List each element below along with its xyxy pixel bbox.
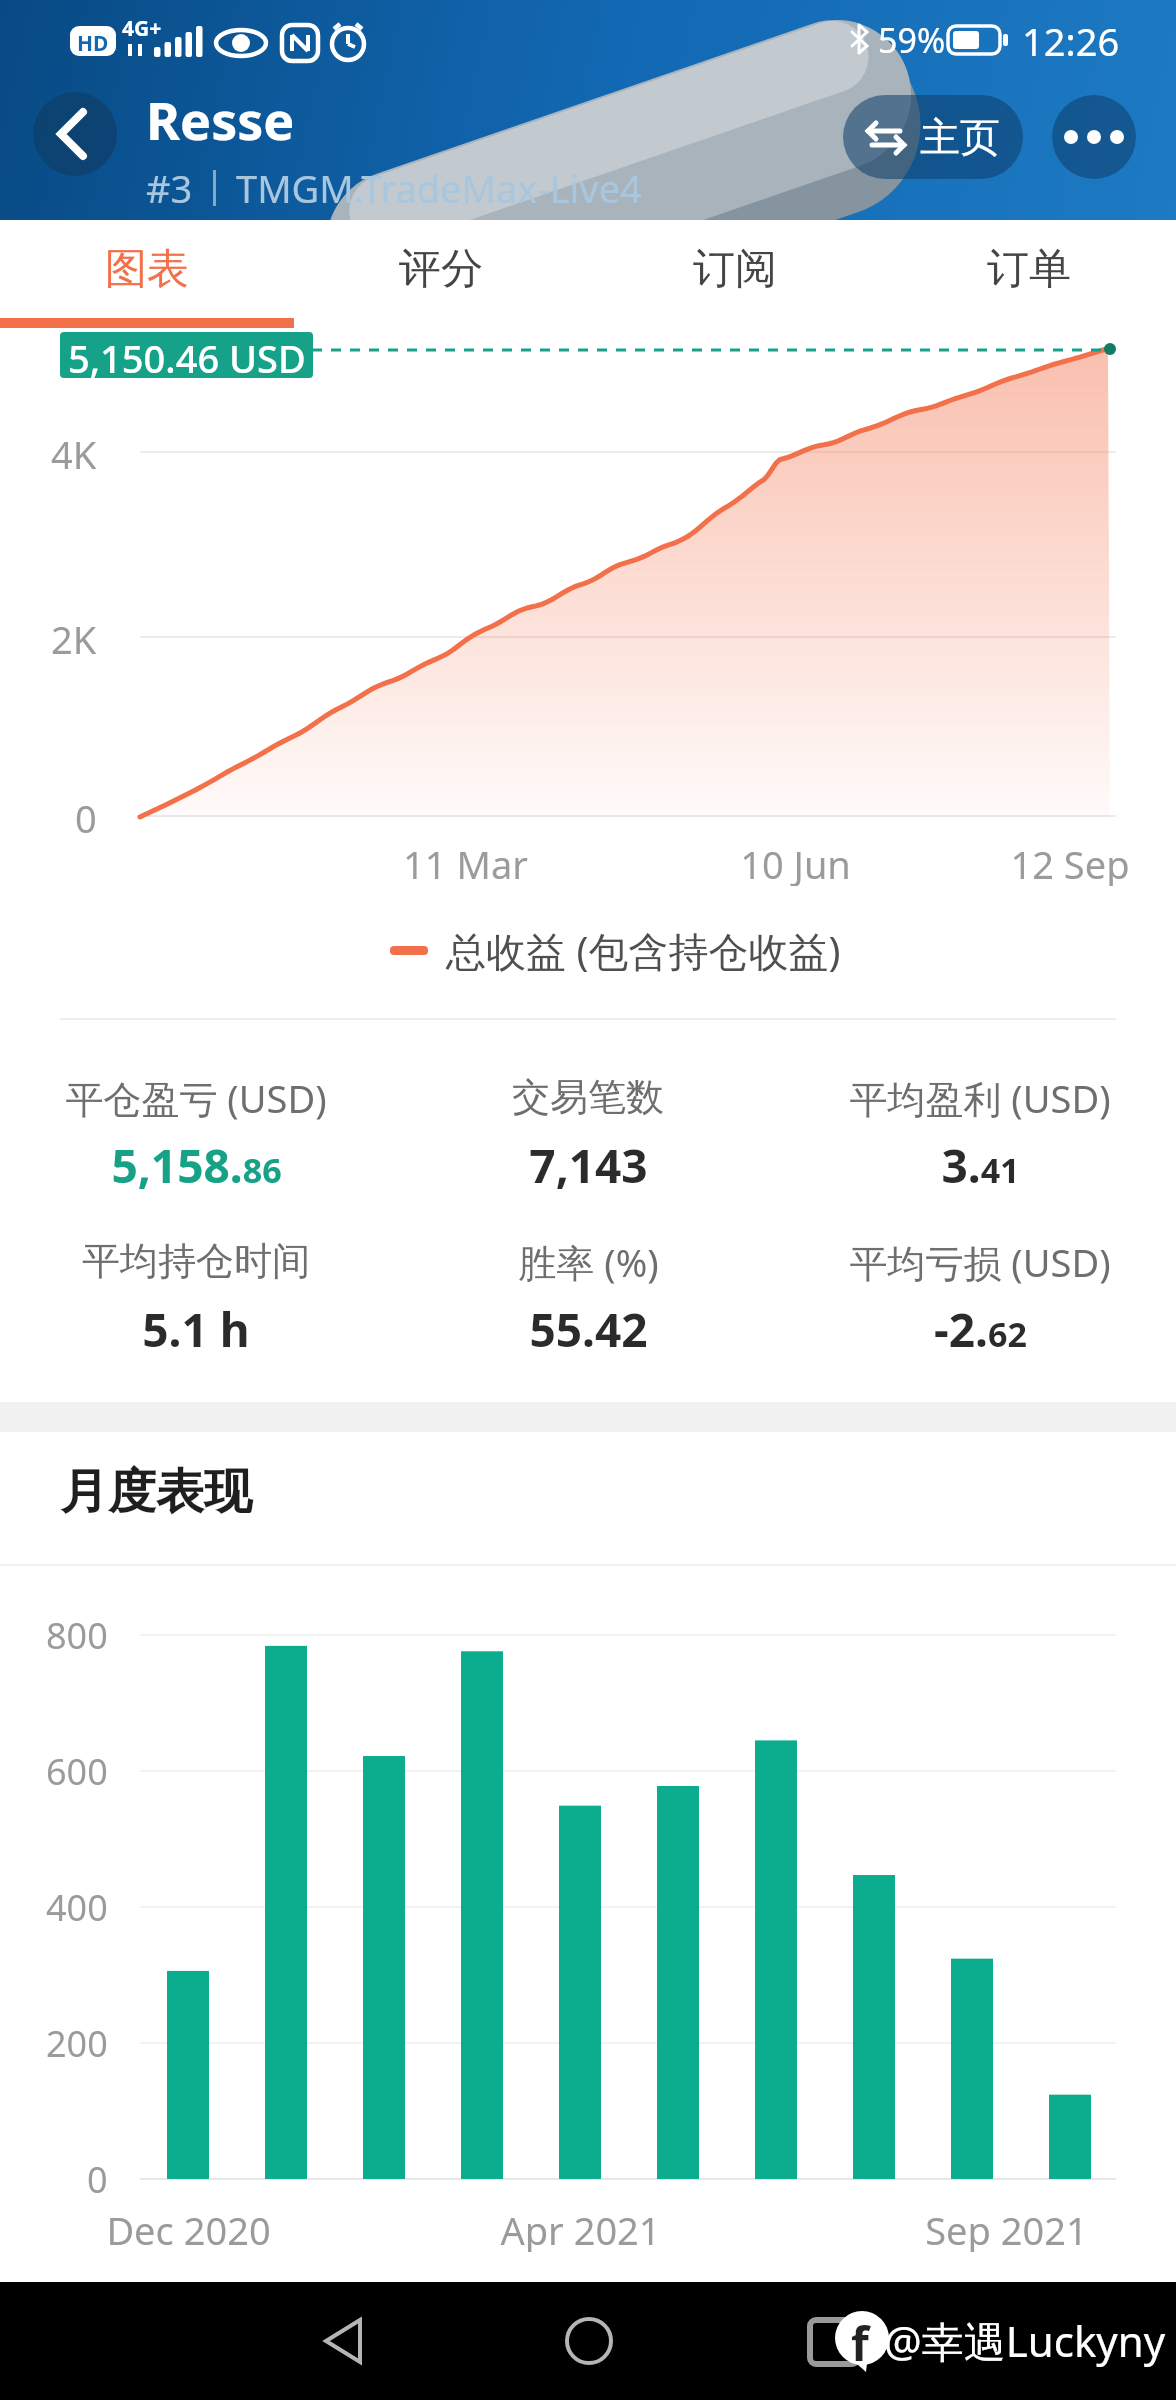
staticText: 400 [46, 1883, 108, 1931]
staticText: 胜率 (%) [518, 1236, 659, 1286]
staticText: 平均盈利 (USD) [849, 1072, 1111, 1122]
button[interactable] [300, 2299, 384, 2383]
staticText: 0 [75, 792, 97, 840]
staticText: 4G+ [122, 14, 162, 43]
staticText: 7,143 [529, 1134, 648, 1196]
button[interactable]: 评分 [294, 220, 588, 318]
staticText: TMGM.TradeMax-Live4 [236, 162, 642, 214]
staticText: 55.42 [529, 1298, 648, 1360]
staticText: 600 [46, 1747, 108, 1795]
staticText: 10 Jun [740, 838, 851, 886]
staticText: #3 [146, 162, 193, 214]
staticText: 200 [46, 2019, 108, 2067]
staticText: 59% [878, 17, 946, 63]
staticText: Dec 2020 [106, 2204, 271, 2252]
staticText: 800 [46, 1611, 108, 1659]
staticText: 2K [51, 613, 97, 661]
staticText: f [851, 2312, 869, 2375]
staticText: 主页 [920, 112, 1000, 162]
button[interactable]: 图表 [0, 220, 294, 318]
staticText: 5,158.86 [111, 1134, 282, 1196]
button[interactable] [547, 2299, 631, 2383]
staticText: 评分 [399, 243, 483, 296]
staticText: 5.1 h [142, 1298, 250, 1360]
button[interactable] [33, 92, 117, 176]
staticText: 0 [87, 2155, 108, 2203]
staticText: 3.41 [941, 1134, 1020, 1196]
staticText: -2.62 [934, 1298, 1027, 1360]
staticText: HD [77, 29, 109, 58]
staticText: 5,150.46 USD [68, 332, 306, 378]
staticText: 订单 [987, 243, 1071, 296]
staticText: 平仓盈亏 (USD) [65, 1072, 327, 1122]
staticText: 订阅 [693, 243, 777, 296]
staticText: 12 Sep [1010, 838, 1130, 886]
staticText: 图表 [105, 243, 189, 296]
button[interactable]: 订阅 [588, 220, 882, 318]
staticText: 交易笔数 [512, 1073, 664, 1121]
staticText: Resse [146, 84, 295, 155]
staticText: Apr 2021 [500, 2204, 661, 2252]
staticText: @幸遇Luckyny [884, 2312, 1166, 2369]
staticText: 12:26 [1022, 15, 1120, 67]
staticText: 平均亏损 (USD) [849, 1236, 1111, 1286]
staticText: 11 Mar [403, 838, 528, 886]
button[interactable] [1052, 95, 1136, 179]
staticText: 4K [51, 428, 97, 476]
staticText: Sep 2021 [925, 2204, 1088, 2252]
staticText: 总收益 (包含持仓收益) [446, 923, 841, 978]
button[interactable]: 主页 [843, 95, 1023, 179]
staticText: 月度表现 [60, 1462, 252, 1522]
staticText: 平均持仓时间 [82, 1237, 310, 1285]
button[interactable]: 订单 [882, 220, 1176, 318]
